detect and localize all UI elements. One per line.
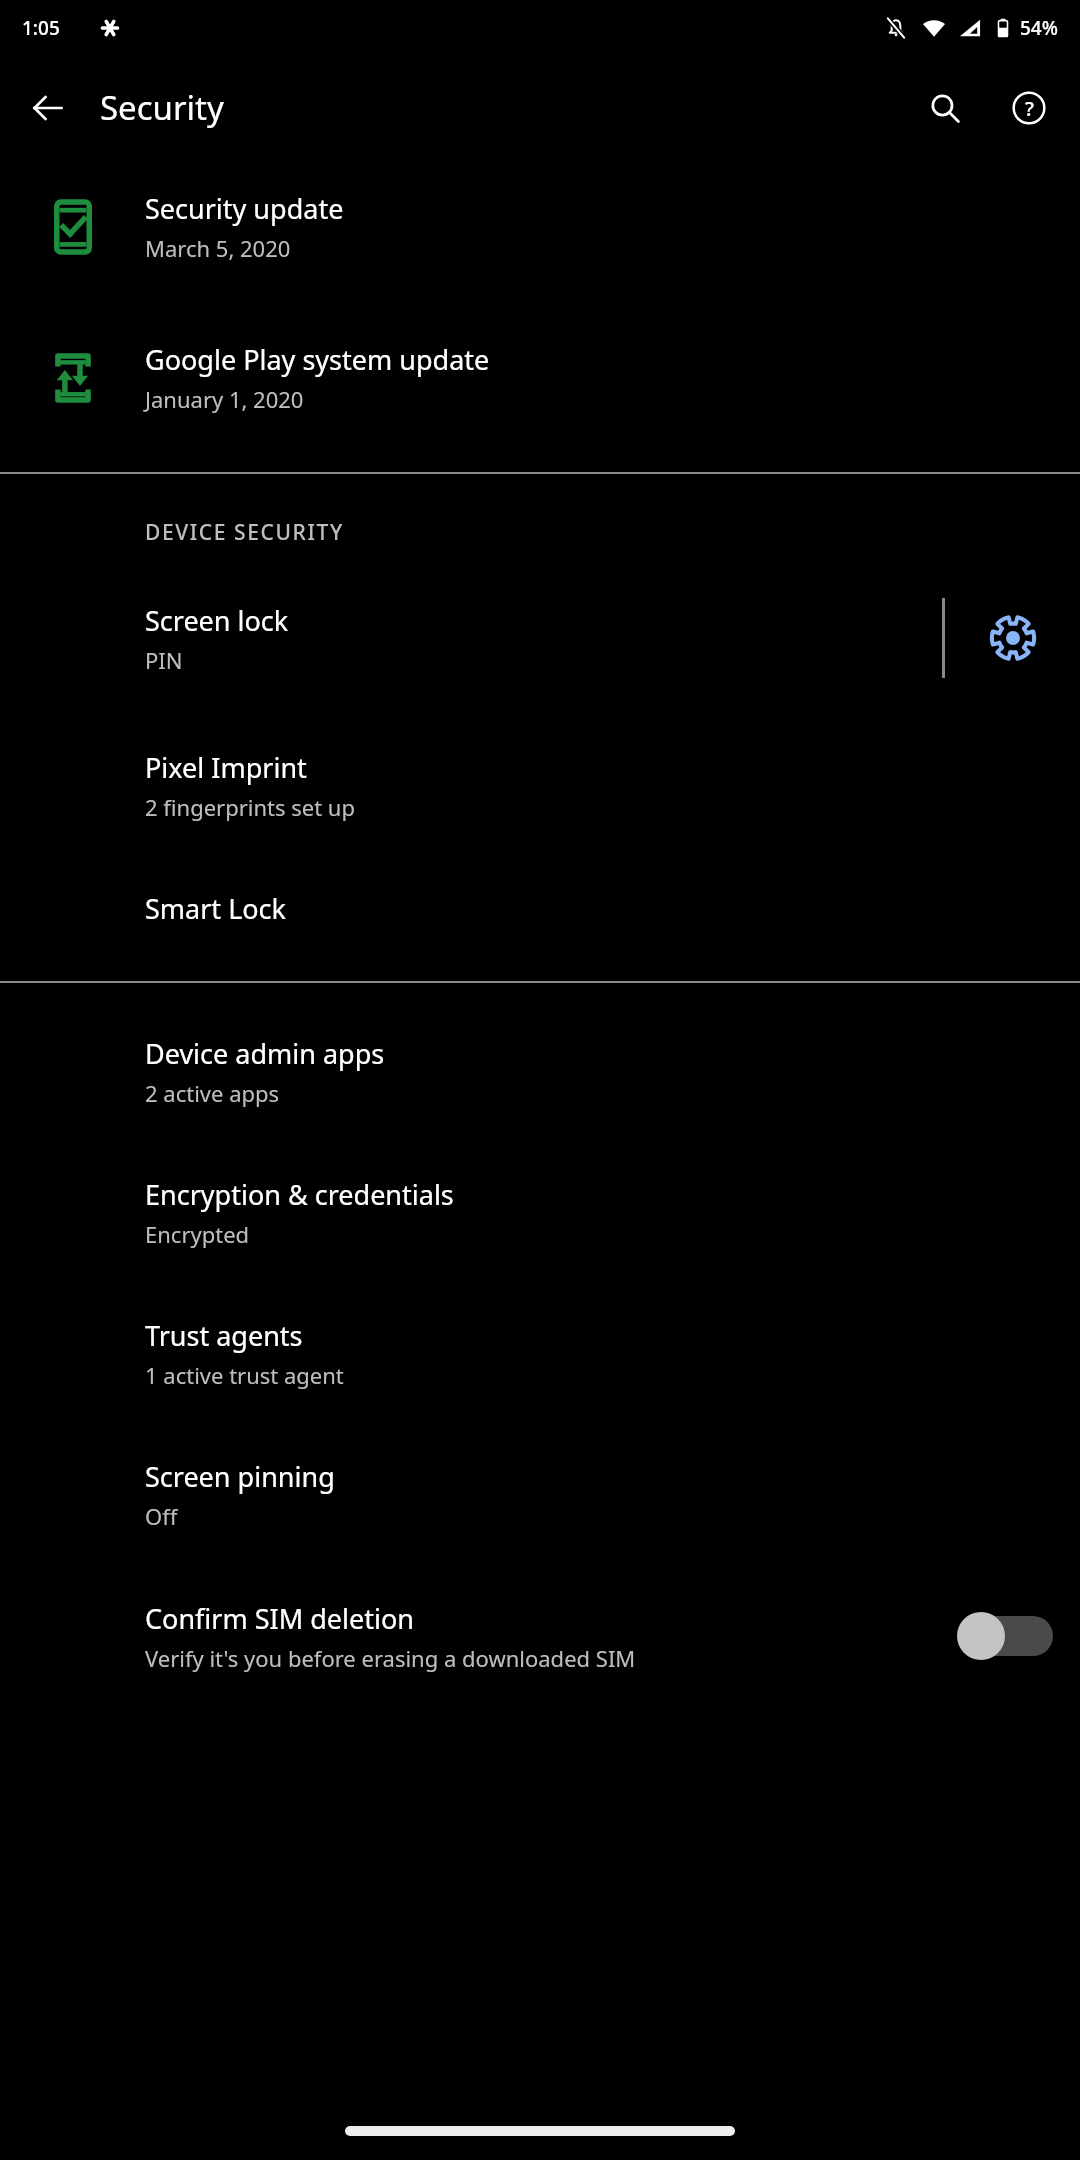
staticText: January 1, 2020 — [145, 384, 304, 414]
staticText: Device admin apps — [145, 1035, 385, 1072]
staticText: Trust agents — [145, 1317, 303, 1354]
staticText: Verify it's you before erasing a downloa… — [145, 1643, 636, 1673]
staticText: Security — [100, 85, 224, 130]
staticText: Security update — [145, 190, 344, 227]
button[interactable]: Screen lock settings — [945, 583, 1080, 693]
button[interactable]: Confirm SIM deletion — [0, 1591, 1080, 1681]
button[interactable]: Pixel Imprint — [0, 741, 1080, 830]
staticText: 1:05 — [22, 15, 60, 41]
staticText: Pixel Imprint — [145, 749, 307, 786]
button[interactable]: Device admin apps — [0, 1027, 1080, 1116]
button[interactable]: Back — [18, 78, 78, 138]
button[interactable]: Encryption & credentials — [0, 1168, 1080, 1257]
staticText: Encrypted — [145, 1219, 250, 1249]
button[interactable]: Smart Lock — [0, 882, 1080, 935]
staticText: Off — [145, 1501, 178, 1531]
staticText: Confirm SIM deletion — [145, 1600, 415, 1637]
staticText: 2 fingerprints set up — [145, 792, 355, 822]
button[interactable]: Screen lock — [0, 588, 942, 689]
button[interactable]: Security update — [0, 176, 1080, 277]
staticText: 2 active apps — [145, 1078, 280, 1108]
staticText: Screen pinning — [145, 1458, 335, 1495]
staticText: Smart Lock — [145, 890, 286, 927]
button[interactable]: Help — [998, 77, 1060, 139]
button[interactable]: Confirm SIM deletion toggle — [930, 1591, 1080, 1681]
staticText: PIN — [145, 645, 183, 675]
button[interactable]: Google Play system update — [0, 327, 1080, 428]
staticText: Screen lock — [145, 602, 289, 639]
staticText: March 5, 2020 — [145, 233, 291, 263]
button[interactable]: Search — [914, 77, 976, 139]
staticText: 1 active trust agent — [145, 1360, 344, 1390]
staticText: 54% — [1020, 15, 1058, 41]
staticText: Encryption & credentials — [145, 1176, 454, 1213]
button[interactable]: Trust agents — [0, 1309, 1080, 1398]
staticText: Google Play system update — [145, 341, 490, 378]
staticText: DEVICE SECURITY — [145, 518, 344, 547]
staticText: ? — [1025, 95, 1034, 122]
button[interactable]: Screen pinning — [0, 1450, 1080, 1539]
